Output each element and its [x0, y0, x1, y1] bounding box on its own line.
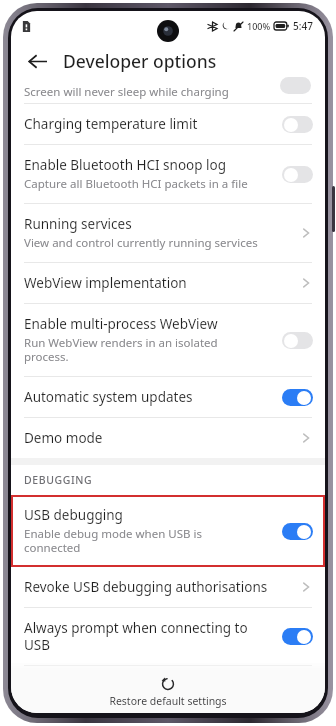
- button[interactable]: Toggle off: [282, 116, 313, 133]
- staticText: View and control currently running servi…: [24, 235, 258, 251]
- staticText: Run WebView renders in an isolated proce…: [24, 335, 218, 365]
- button[interactable]: Charging temperature limit: [11, 104, 325, 144]
- staticText: Running services: [24, 215, 132, 233]
- staticText: Screen will never sleep while charging: [24, 84, 229, 100]
- button[interactable]: WebView implementation: [11, 263, 325, 303]
- button[interactable]: Enable multi-process WebView: [11, 304, 325, 376]
- staticText: Monitor apps installed by ADB: [24, 677, 216, 695]
- button[interactable]: Back: [17, 41, 57, 81]
- button[interactable]: USB debugging: [11, 495, 325, 567]
- staticText: 5:47: [293, 19, 313, 33]
- staticText: Restore default settings: [109, 694, 227, 708]
- staticText: DEBUGGING: [24, 473, 93, 487]
- button[interactable]: Demo mode: [11, 418, 325, 458]
- button[interactable]: Enable Bluetooth HCI snoop log: [11, 145, 325, 203]
- button[interactable]: Toggle on: [282, 523, 313, 540]
- button[interactable]: Always prompt when connecting to USB: [11, 608, 325, 665]
- staticText: Always prompt when connecting to USB: [24, 619, 248, 654]
- staticText: Demo mode: [24, 429, 103, 447]
- button[interactable]: Toggle on: [282, 628, 313, 645]
- button[interactable]: Revoke USB debugging authorisations: [11, 567, 325, 607]
- button[interactable]: Running services: [11, 204, 325, 262]
- button[interactable]: Monitor apps installed by ADB: [11, 666, 325, 706]
- staticText: USB debugging: [24, 506, 123, 524]
- button[interactable]: Restore default settings: [11, 671, 325, 713]
- button[interactable]: Toggle off: [282, 332, 313, 349]
- staticText: Enable debug mode when USB is connected: [24, 526, 202, 556]
- staticText: Capture all Bluetooth HCI packets in a f…: [24, 176, 248, 192]
- staticText: Developer options: [63, 49, 217, 73]
- button[interactable]: Toggle on: [282, 389, 313, 406]
- staticText: Revoke USB debugging authorisations: [24, 578, 268, 596]
- staticText: 100%: [247, 20, 271, 32]
- staticText: Charging temperature limit: [24, 115, 198, 133]
- staticText: Enable multi-process WebView: [24, 315, 218, 333]
- button[interactable]: Automatic system updates: [11, 377, 325, 417]
- staticText: Enable Bluetooth HCI snoop log: [24, 156, 227, 174]
- staticText: Automatic system updates: [24, 388, 193, 406]
- button[interactable]: Toggle off: [282, 166, 313, 183]
- staticText: WebView implementation: [24, 274, 187, 292]
